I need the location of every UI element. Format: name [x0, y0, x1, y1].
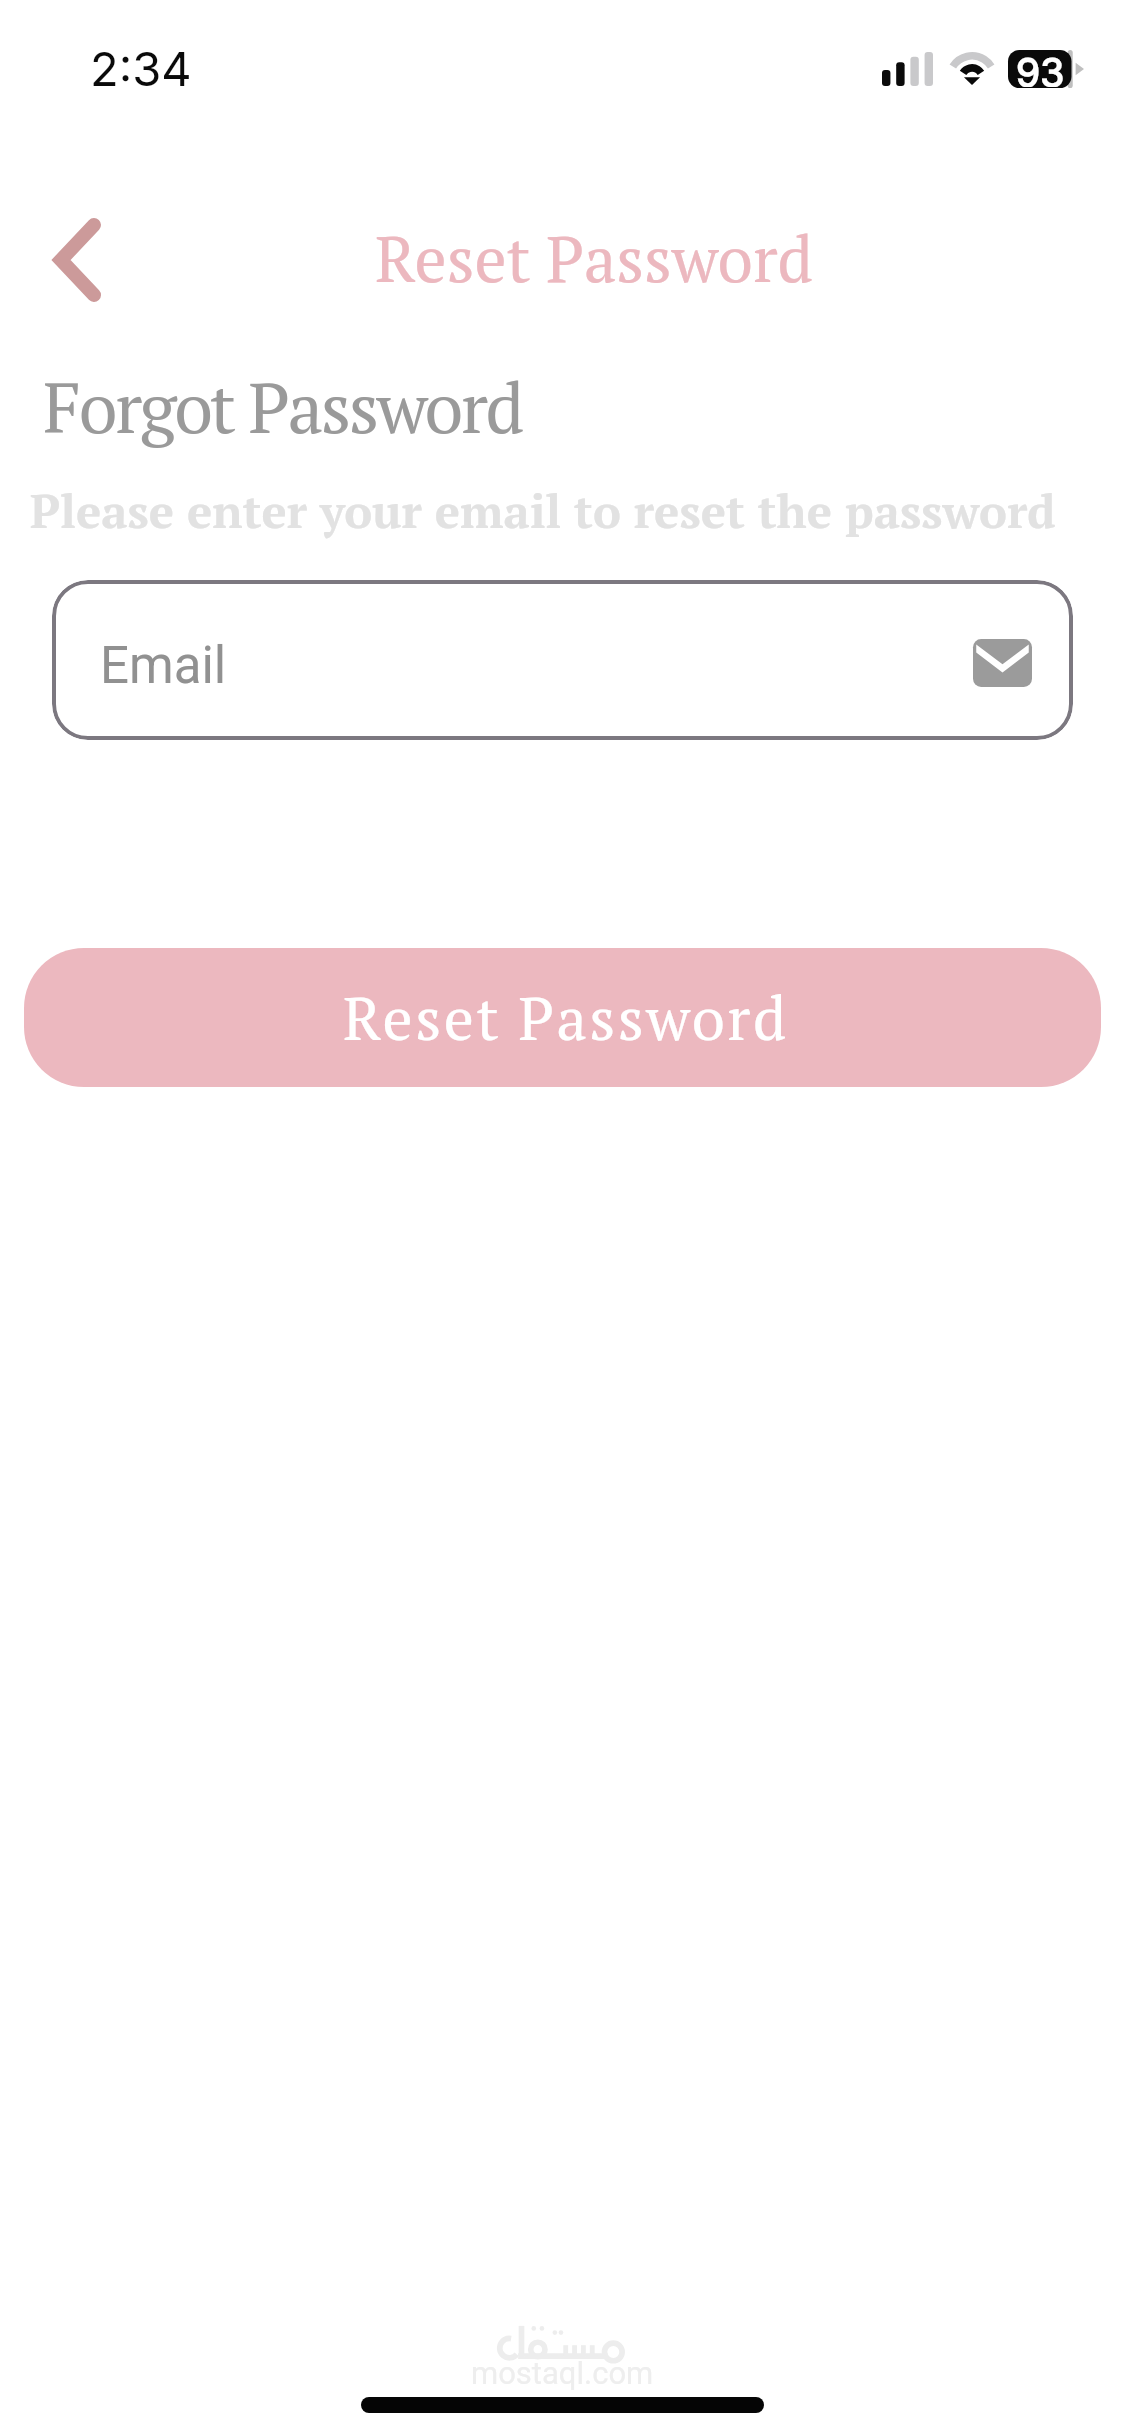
button[interactable]: Back — [27, 200, 127, 320]
staticText: Email — [100, 636, 227, 696]
button[interactable]: Email — [52, 580, 1073, 740]
staticText: 93 — [1016, 49, 1065, 87]
staticText: Reset Password — [343, 978, 789, 1058]
staticText: mostaql.com — [471, 2355, 654, 2391]
staticText: Reset Password — [375, 216, 814, 301]
staticText: 2:34 — [90, 40, 192, 97]
button[interactable]: Reset Password — [24, 948, 1101, 1087]
staticText: Please enter your email to reset the pas… — [30, 479, 1056, 541]
staticText: Forgot Password — [43, 360, 523, 453]
